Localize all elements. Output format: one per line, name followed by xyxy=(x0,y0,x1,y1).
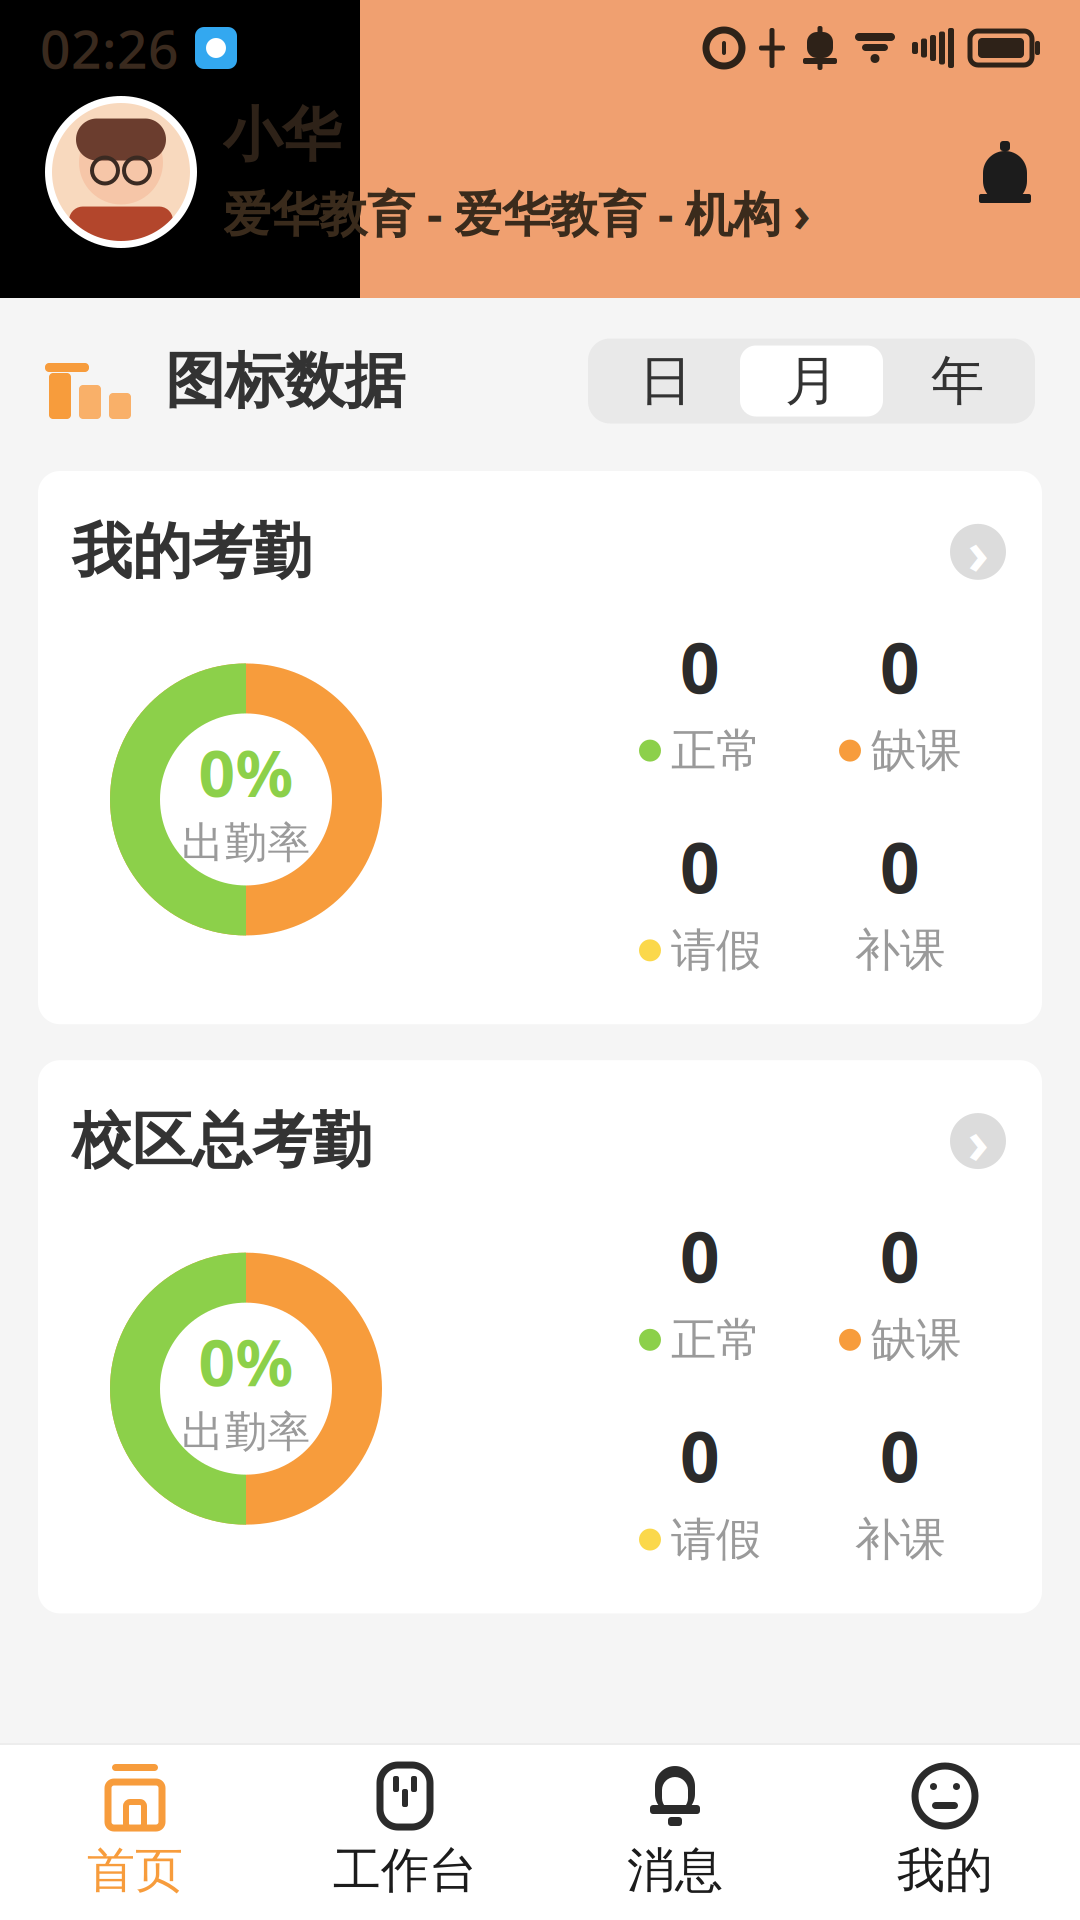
button[interactable]: 首页 xyxy=(0,1745,270,1920)
button[interactable]: 年 xyxy=(883,338,1032,423)
staticText: 0 xyxy=(680,820,720,912)
staticText: 0 xyxy=(680,1210,720,1302)
button[interactable]: 小华 xyxy=(45,96,811,248)
staticText: 补课 xyxy=(855,1512,945,1567)
staticText: 请假 xyxy=(671,922,761,978)
staticText: 出勤率 xyxy=(181,1406,310,1458)
button[interactable]: 月 xyxy=(740,345,883,416)
staticText: 0 xyxy=(680,1410,720,1502)
staticText: 图标数据 xyxy=(165,344,405,418)
staticText: 0 xyxy=(880,820,920,912)
button[interactable]: 工作台 xyxy=(270,1745,540,1920)
staticText: 工作台 xyxy=(333,1841,477,1900)
staticText: 我的 xyxy=(897,1841,993,1900)
staticText: 小华 xyxy=(223,99,341,171)
staticText: 正常 xyxy=(671,1312,761,1368)
staticText: 首页 xyxy=(87,1841,183,1900)
staticText: 月 xyxy=(785,348,838,414)
staticText: 年 xyxy=(931,348,984,414)
staticText: 02:26 xyxy=(40,13,179,83)
staticText: 0% xyxy=(198,730,293,815)
staticText: 0 xyxy=(680,621,720,713)
staticText: 缺课 xyxy=(871,1312,961,1368)
staticText: 消息 xyxy=(627,1841,723,1900)
staticText: 0 xyxy=(880,1210,920,1302)
staticText: 0% xyxy=(198,1319,293,1404)
staticText: 缺课 xyxy=(871,723,961,778)
staticText: › xyxy=(967,1102,988,1180)
staticText: › xyxy=(967,513,988,591)
staticText: 爱华教育 - 爱华教育 - 机构 › xyxy=(223,181,811,245)
button[interactable]: 查看我的考勤详情 xyxy=(948,522,1008,582)
staticText: 0 xyxy=(880,621,920,713)
button[interactable]: 通知 xyxy=(970,137,1040,207)
staticText: 校区总考勤 xyxy=(72,1104,372,1178)
staticText: 正常 xyxy=(671,723,761,778)
staticText: 日 xyxy=(639,348,692,414)
button[interactable]: 我的 xyxy=(810,1745,1080,1920)
button[interactable]: 查看校区总考勤详情 xyxy=(948,1111,1008,1171)
button[interactable]: 日 xyxy=(591,338,740,423)
staticText: 我的考勤 xyxy=(72,515,312,589)
staticText: 0 xyxy=(880,1410,920,1502)
staticText: 请假 xyxy=(671,1512,761,1567)
staticText: 补课 xyxy=(855,922,945,978)
button[interactable]: 消息 xyxy=(540,1745,810,1920)
staticText: 出勤率 xyxy=(181,817,310,869)
